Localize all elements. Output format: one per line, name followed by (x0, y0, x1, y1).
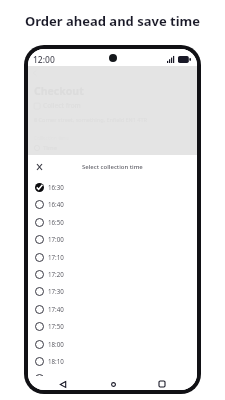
button[interactable]: Back (56, 377, 70, 390)
button[interactable]: 17:20 (28, 266, 197, 283)
staticText: Checkout (34, 84, 84, 98)
button[interactable]: 18:00 (28, 336, 197, 353)
staticText: 18:10 (48, 357, 64, 365)
button[interactable]: 18:10 (28, 353, 197, 370)
staticText: 12:00 (33, 54, 55, 66)
button[interactable]: 16:40 (28, 196, 197, 213)
staticText: 16:30 (48, 183, 64, 191)
button[interactable]: 17:30 (28, 283, 197, 300)
staticText: 17:50 (48, 322, 64, 330)
button[interactable]: 17:40 (28, 301, 197, 318)
staticText: 17:40 (48, 305, 64, 313)
button[interactable]: Recents (155, 377, 169, 390)
button[interactable]: 16:50 (28, 214, 197, 231)
button[interactable]: 18:20 (28, 370, 197, 376)
staticText: 18:00 (48, 340, 64, 348)
staticText: 16:40 (48, 200, 64, 208)
button[interactable]: Close (30, 158, 48, 176)
staticText: 17:30 (48, 287, 64, 295)
button[interactable]: 17:00 (28, 231, 197, 248)
staticText: 17:10 (48, 253, 64, 261)
button[interactable]: 17:50 (28, 318, 197, 335)
button[interactable]: 17:10 (28, 249, 197, 266)
button[interactable]: 16:30 (28, 179, 197, 196)
staticText: 16:50 (48, 218, 64, 226)
staticText: 17:20 (48, 270, 64, 278)
staticText: Order ahead and save time (0, 12, 225, 30)
staticText: 17:00 (48, 235, 64, 243)
button[interactable]: Home (106, 377, 120, 390)
staticText: Select collection time (82, 163, 143, 171)
